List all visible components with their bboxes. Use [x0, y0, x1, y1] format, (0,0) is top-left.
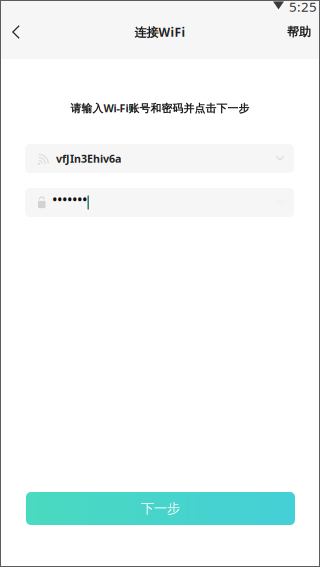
- staticText: 连接WiFi: [134, 24, 185, 40]
- staticText: vfJIn3Ehiv6a: [56, 151, 121, 166]
- staticText: •••••••: [52, 191, 87, 207]
- button[interactable]: 帮助: [277, 12, 320, 52]
- staticText: 请输入Wi-Fi账号和密码并点击下一步: [70, 101, 249, 115]
- staticText: 5:25: [289, 0, 317, 15]
- staticText: 下一步: [141, 500, 180, 517]
- button[interactable]: vfJIn3Ehiv6a: [25, 144, 294, 173]
- button[interactable]: 下一步: [26, 492, 295, 525]
- button[interactable]: Back: [0, 12, 34, 52]
- staticText: 帮助: [287, 25, 311, 39]
